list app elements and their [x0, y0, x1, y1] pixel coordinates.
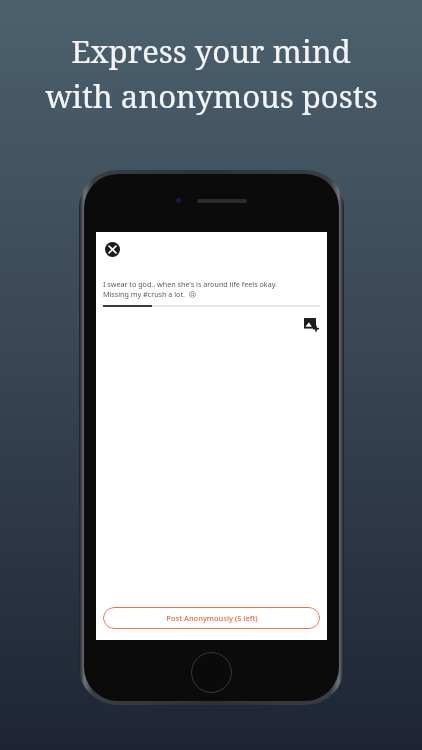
button[interactable]: Add photo	[302, 315, 320, 333]
staticText: I swear to god.. when she's is around li…	[103, 279, 277, 289]
staticText: Missing my #crush a lot. 😢	[103, 289, 197, 299]
button[interactable]: Home	[191, 652, 232, 693]
button[interactable]: Close	[103, 240, 121, 258]
button[interactable]: Post Anonymously (5 left)	[103, 607, 320, 629]
staticText: Post Anonymously (5 left)	[166, 613, 258, 623]
staticText: with anonymous posts	[45, 75, 378, 117]
staticText: Express your mind	[71, 30, 351, 72]
